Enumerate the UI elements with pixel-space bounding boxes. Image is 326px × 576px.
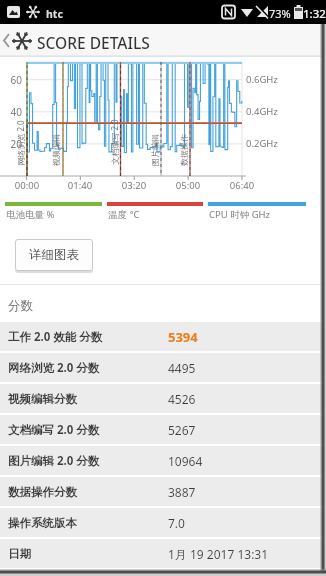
- staticText: htc: [46, 7, 63, 21]
- staticText: 视频编辑: [51, 118, 63, 182]
- button[interactable]: [0, 24, 36, 57]
- staticText: SCORE DETAILS: [37, 32, 150, 53]
- button[interactable]: 文档编写 2.0 分数: [0, 415, 326, 444]
- staticText: 5267: [168, 422, 196, 438]
- staticText: 20: [8, 137, 22, 151]
- button[interactable]: 工作 2.0 效能 分数: [0, 322, 326, 351]
- staticText: 文档编写 2.0 分数: [8, 422, 100, 438]
- button[interactable]: 操作系统版本: [0, 508, 326, 537]
- staticText: 06:40: [228, 179, 256, 192]
- staticText: 10964: [168, 453, 203, 469]
- staticText: 分数: [8, 298, 33, 314]
- staticText: 40: [8, 105, 22, 119]
- staticText: 电池电量 %: [6, 208, 55, 221]
- staticText: 1:32: [303, 6, 326, 22]
- staticText: 05:00: [174, 179, 202, 192]
- staticText: 工作 2.0 效能 分数: [8, 329, 103, 345]
- staticText: 4495: [168, 360, 196, 376]
- staticText: 01:40: [66, 179, 94, 192]
- staticText: 视频编辑分数: [8, 392, 77, 406]
- staticText: 网络浏览 2.0: [15, 111, 27, 175]
- staticText: 00:00: [13, 179, 41, 192]
- staticText: 7.0: [168, 515, 185, 531]
- staticText: 0.2GHz: [246, 137, 278, 150]
- button[interactable]: 网络浏览 2.0 分数: [0, 353, 326, 382]
- staticText: 文档编写 2.0: [109, 110, 121, 174]
- button[interactable]: 日期: [0, 539, 326, 568]
- staticText: 数据操作分数: [8, 485, 77, 499]
- staticText: 3887: [168, 484, 196, 500]
- button[interactable]: 视频编辑分数: [0, 384, 326, 413]
- staticText: 0.6GHz: [246, 73, 278, 86]
- staticText: 日期: [8, 547, 31, 561]
- staticText: 73%: [269, 6, 291, 21]
- staticText: CPU 时钟 GHz: [209, 208, 271, 221]
- staticText: 1月 19 2017 13:31: [168, 546, 269, 562]
- staticText: 5394: [168, 328, 198, 346]
- staticText: 4526: [168, 391, 196, 407]
- staticText: 03:20: [120, 179, 148, 192]
- button[interactable]: 详细图表: [15, 239, 93, 271]
- staticText: 网络浏览 2.0 分数: [8, 360, 100, 376]
- staticText: 操作系统版本: [8, 516, 77, 530]
- staticText: 图片编辑: [150, 118, 162, 182]
- staticText: 60: [8, 73, 22, 87]
- staticText: 温度 °C: [108, 208, 140, 221]
- staticText: 数据操作: [179, 118, 191, 182]
- staticText: 详细图表: [29, 247, 79, 263]
- staticText: 0.4GHz: [246, 105, 278, 118]
- staticText: 图片编辑 2.0 分数: [8, 453, 100, 469]
- button[interactable]: 图片编辑 2.0 分数: [0, 446, 326, 475]
- button[interactable]: 数据操作分数: [0, 477, 326, 506]
